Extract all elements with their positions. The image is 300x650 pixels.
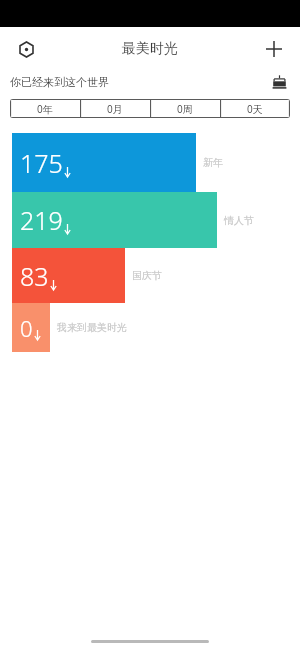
- staticText: 83: [20, 259, 49, 293]
- staticText: 你已经来到这个世界: [10, 75, 109, 89]
- staticText: 0: [20, 313, 33, 343]
- button[interactable]: 0周: [150, 99, 220, 118]
- button[interactable]: 83: [0, 248, 300, 303]
- staticText: 0年: [37, 102, 53, 116]
- staticText: 国庆节: [132, 269, 162, 282]
- staticText: 新年: [203, 156, 223, 169]
- staticText: 0天: [247, 102, 263, 116]
- staticText: 最美时光: [122, 40, 178, 58]
- button[interactable]: Add: [256, 31, 292, 67]
- button[interactable]: 0天: [220, 99, 290, 118]
- button[interactable]: Birthday: [268, 71, 290, 93]
- button[interactable]: 0月: [80, 99, 150, 118]
- staticText: 情人节: [224, 214, 254, 227]
- button[interactable]: Settings: [8, 31, 44, 67]
- button[interactable]: 0年: [10, 99, 80, 118]
- button[interactable]: 219: [0, 192, 300, 248]
- button[interactable]: 175: [0, 133, 300, 192]
- button[interactable]: 0: [0, 303, 300, 352]
- staticText: 我来到最美时光: [57, 321, 127, 334]
- staticText: 219: [20, 203, 63, 237]
- staticText: 0月: [107, 102, 123, 116]
- staticText: 175: [20, 146, 63, 180]
- staticText: 0周: [177, 102, 193, 116]
